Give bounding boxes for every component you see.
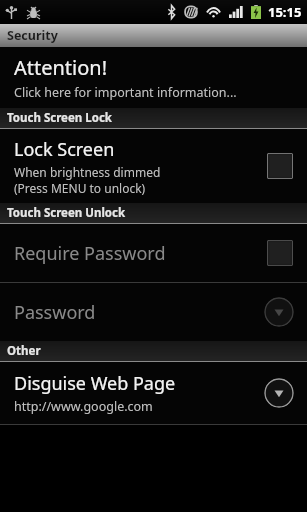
button[interactable]: Require Password xyxy=(0,224,307,282)
button[interactable]: Attention! xyxy=(0,47,307,108)
button[interactable]: Toggle checkbox xyxy=(267,240,293,266)
button[interactable]: Toggle checkbox xyxy=(267,153,293,179)
staticText: Require Password xyxy=(14,241,267,266)
button[interactable]: Lock Screen xyxy=(0,129,307,203)
staticText: http://www.google.com xyxy=(14,398,153,415)
staticText: Security xyxy=(7,27,58,44)
button[interactable]: Password xyxy=(0,283,307,341)
staticText: (Press MENU to unlock) xyxy=(14,180,146,196)
staticText: When brightness dimmed xyxy=(14,164,161,180)
button[interactable]: Open options xyxy=(264,297,294,327)
staticText: 15:15 xyxy=(268,3,302,21)
staticText: Attention! xyxy=(14,54,108,81)
staticText: Touch Screen Unlock xyxy=(7,205,126,221)
staticText: Disguise Web Page xyxy=(14,371,176,396)
staticText: Other xyxy=(7,343,41,359)
staticText: Touch Screen Lock xyxy=(7,110,112,126)
button[interactable]: Disguise Web Page xyxy=(0,362,307,424)
staticText: Click here for important information... xyxy=(14,84,237,101)
button[interactable]: Open options xyxy=(264,378,294,408)
staticText: Password xyxy=(14,300,264,325)
staticText: Lock Screen xyxy=(14,137,115,162)
